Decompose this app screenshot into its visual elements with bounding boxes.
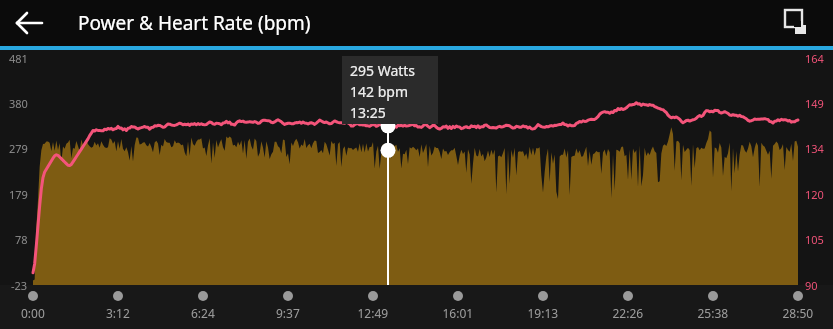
button[interactable]: Back [0,0,46,46]
button[interactable]: Compare [0,0,46,46]
